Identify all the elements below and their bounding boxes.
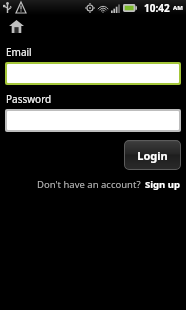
button[interactable]: Home bbox=[7, 17, 25, 35]
staticText: 10:42 bbox=[144, 1, 170, 15]
button[interactable]: Login bbox=[124, 140, 181, 170]
staticText: Login bbox=[137, 148, 168, 163]
staticText: Password bbox=[6, 92, 52, 106]
staticText: Email bbox=[6, 45, 32, 59]
button[interactable]: Sign up bbox=[145, 178, 180, 191]
staticText: Don't have an account? bbox=[37, 178, 141, 191]
staticText: AM bbox=[173, 4, 183, 12]
staticText: Sign up bbox=[145, 178, 180, 191]
